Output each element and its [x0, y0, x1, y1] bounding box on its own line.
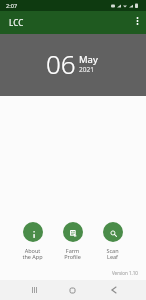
staticText: Farm Profile [64, 247, 81, 261]
staticText: Scan Leaf [106, 247, 119, 261]
button[interactable]: Home [63, 280, 83, 300]
button[interactable]: Recents [24, 280, 44, 300]
staticText: About the App [22, 247, 43, 261]
button[interactable]: Scan Leaf [93, 222, 132, 261]
staticText: Version 1.10 [112, 270, 138, 276]
button[interactable]: Back [104, 280, 124, 300]
staticText: 2:07 [6, 2, 18, 9]
button[interactable]: About the App [13, 222, 52, 261]
staticText: 06 [46, 46, 76, 81]
staticText: LCC [9, 17, 24, 28]
staticText: May [79, 53, 98, 66]
staticText: 2021 [79, 65, 94, 74]
button[interactable]: Farm Profile [53, 222, 92, 261]
button[interactable]: More options [128, 11, 146, 34]
